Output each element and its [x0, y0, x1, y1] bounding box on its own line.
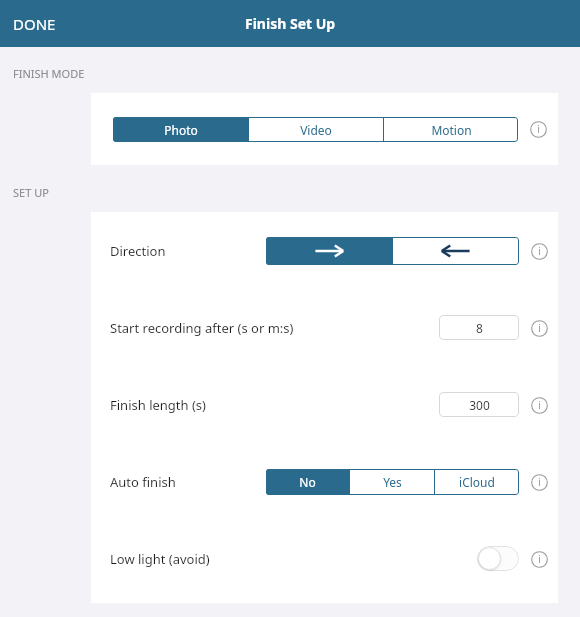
button[interactable]: Low light (avoid)	[91, 520, 558, 597]
staticText: No	[299, 474, 316, 490]
staticText: i	[538, 321, 541, 335]
button[interactable]: More information	[526, 238, 552, 264]
staticText: i	[538, 552, 541, 566]
staticText: Video	[300, 122, 332, 138]
staticText: i	[538, 475, 541, 489]
staticText: Auto finish	[110, 473, 176, 491]
staticText: 300	[469, 397, 490, 413]
button[interactable]	[266, 237, 392, 265]
button[interactable]: 8	[439, 315, 519, 340]
staticText: Finish length (s)	[110, 396, 206, 414]
button[interactable]: No	[266, 469, 349, 495]
staticText: Yes	[383, 474, 402, 490]
button[interactable]: Start recording after (s or m:s)	[91, 289, 558, 366]
staticText: DONE	[13, 14, 56, 34]
staticText: Direction	[110, 242, 166, 260]
staticText: SET UP	[13, 185, 49, 200]
button[interactable]: Low light toggle	[477, 546, 519, 571]
staticText: Finish Set Up	[245, 14, 336, 33]
staticText: 8	[476, 320, 483, 336]
staticText: Motion	[431, 122, 472, 138]
button[interactable]: DONE	[0, 8, 69, 40]
staticText: Photo	[164, 122, 198, 138]
button[interactable]: More information	[526, 392, 552, 418]
button[interactable]: More information	[526, 469, 552, 495]
button[interactable]: Direction	[91, 212, 558, 289]
button[interactable]: More information	[525, 116, 551, 142]
staticText: Low light (avoid)	[110, 550, 210, 568]
button[interactable]	[393, 237, 519, 265]
button[interactable]: Auto finish	[91, 443, 558, 520]
staticText: Start recording after (s or m:s)	[110, 319, 294, 337]
button[interactable]: Motion	[384, 117, 518, 142]
staticText: i	[538, 398, 541, 412]
staticText: i	[537, 122, 540, 136]
button[interactable]: More information	[526, 546, 552, 572]
staticText: FINISH MODE	[13, 66, 85, 81]
button[interactable]: More information	[526, 315, 552, 341]
staticText: i	[538, 244, 541, 258]
button[interactable]: Yes	[350, 469, 434, 495]
button[interactable]: Photo	[113, 117, 248, 142]
staticText: iCloud	[459, 474, 495, 490]
button[interactable]: Finish length (s)	[91, 366, 558, 443]
button[interactable]: Video	[249, 117, 383, 142]
button[interactable]: iCloud	[435, 469, 519, 495]
button[interactable]: 300	[439, 392, 519, 417]
